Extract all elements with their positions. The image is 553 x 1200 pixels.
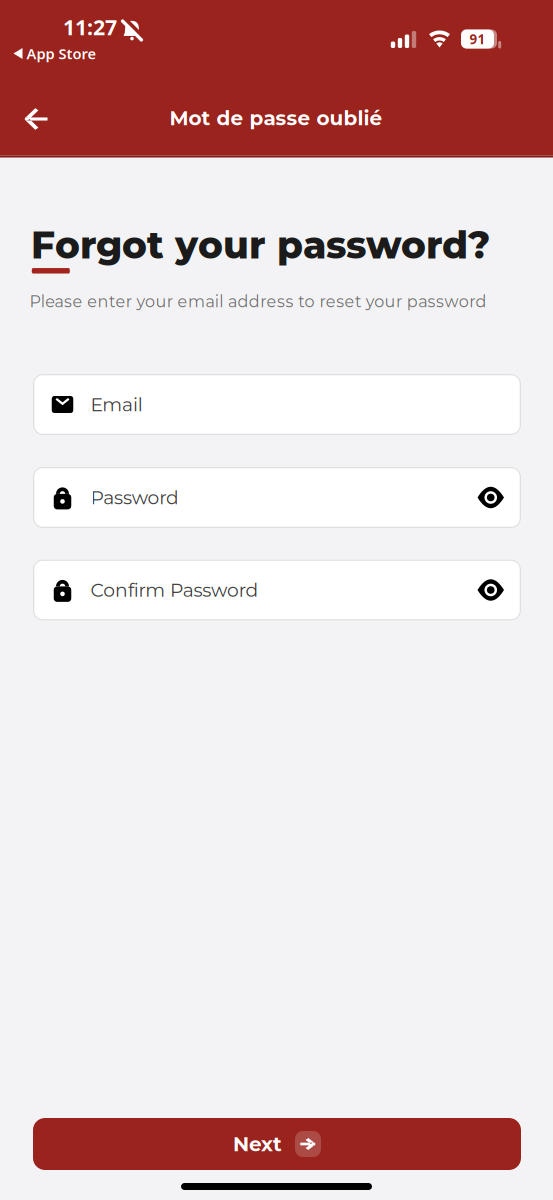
button[interactable]: [12, 95, 60, 142]
button[interactable]: [477, 580, 504, 600]
button[interactable]: Confirm Password: [33, 559, 521, 620]
staticText: Confirm Password: [90, 579, 258, 601]
staticText: Mot de passe oublié: [169, 106, 382, 130]
button[interactable]: App Store: [13, 41, 96, 65]
button[interactable]: Next: [33, 1118, 521, 1170]
staticText: 91: [469, 30, 485, 48]
staticText: 11:27: [63, 12, 117, 42]
staticText: Next: [233, 1132, 282, 1156]
button[interactable]: [477, 487, 504, 507]
staticText: Email: [90, 393, 143, 416]
staticText: App Store: [26, 43, 96, 63]
staticText: Forgot your password?: [31, 222, 490, 268]
button[interactable]: Email: [33, 374, 521, 435]
staticText: Please enter your email address to reset…: [29, 292, 487, 311]
staticText: Password: [90, 486, 179, 509]
button[interactable]: Password: [33, 467, 521, 528]
